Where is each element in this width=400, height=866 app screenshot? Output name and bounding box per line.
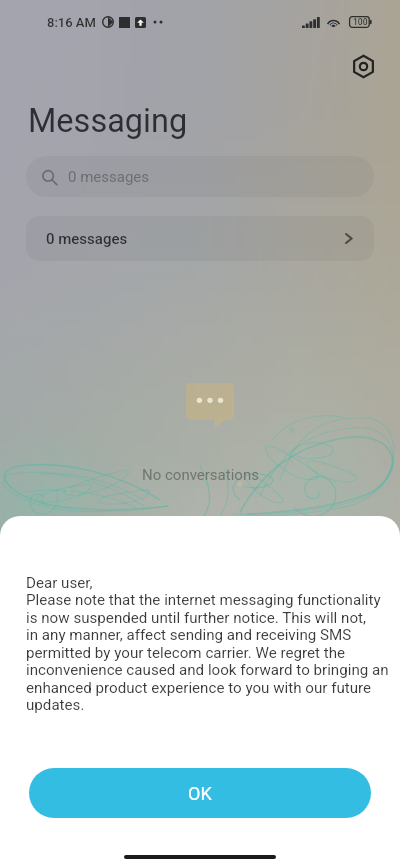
staticText: 0 messages (46, 230, 128, 248)
staticText: Messaging (28, 102, 188, 140)
staticText: 100 (353, 17, 368, 27)
staticText: 0 messages (68, 168, 150, 186)
staticText: 8:16 AM (47, 15, 96, 30)
staticText: OK (188, 783, 212, 804)
staticText: permitted by your telecom carrier. We re… (26, 644, 346, 662)
staticText: Please note that the internet messaging … (26, 591, 381, 609)
staticText: No conversations (142, 466, 259, 484)
staticText: Dear user, (26, 574, 93, 592)
button[interactable]: 0 messages (26, 216, 374, 261)
staticText: updates. (26, 696, 85, 714)
staticText: inconvenience caused and look forward to… (26, 661, 389, 679)
staticText: enhanced product experience to you with … (26, 679, 372, 697)
button[interactable]: OK (29, 768, 371, 818)
staticText: in any manner, affect sending and receiv… (26, 626, 352, 644)
button[interactable]: 0 messages (26, 156, 374, 197)
staticText: is now suspended until further notice. T… (26, 609, 366, 627)
button[interactable]: Settings (346, 49, 380, 83)
